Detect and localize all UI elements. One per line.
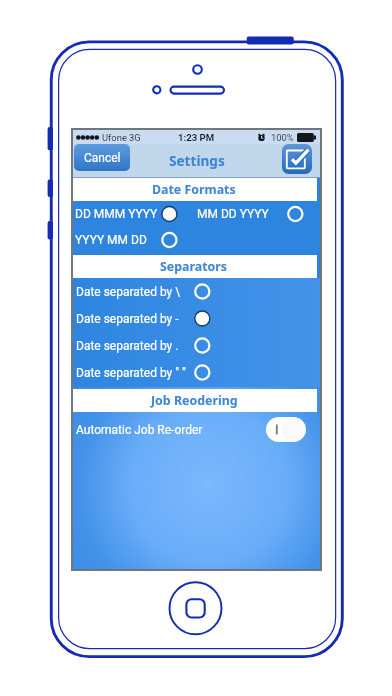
button[interactable]: Edit xyxy=(282,144,312,174)
button[interactable]: YYYY MM DD xyxy=(73,227,183,253)
button[interactable]: Date separated by " " xyxy=(73,359,320,386)
staticText: 1:23 PM xyxy=(178,132,215,143)
button[interactable]: MM DD YYYY xyxy=(183,201,320,227)
staticText: Automatic Job Re-order xyxy=(76,423,203,437)
staticText: Cancel xyxy=(84,151,121,165)
staticText: Job Reodering xyxy=(151,392,238,409)
staticText: Ufone xyxy=(102,132,127,143)
button[interactable]: Automatic Job Re-order xyxy=(73,412,320,447)
staticText: YYYY MM DD xyxy=(75,233,147,247)
button[interactable]: Date separated by - xyxy=(73,305,320,332)
staticText: 3G xyxy=(129,132,141,143)
staticText: Settings xyxy=(169,151,225,170)
staticText: Date separated by - xyxy=(76,312,179,326)
staticText: Date separated by \ xyxy=(76,285,181,299)
staticText: MM DD YYYY xyxy=(197,207,269,221)
staticText: 100% xyxy=(271,132,294,143)
button[interactable]: Date separated by . xyxy=(73,332,320,359)
button[interactable]: Date separated by \ xyxy=(73,278,320,305)
staticText: Date separated by . xyxy=(76,339,179,353)
staticText: Date separated by " " xyxy=(76,366,186,380)
button[interactable]: Automatic Job Re-order toggle xyxy=(266,417,306,442)
button[interactable]: Cancel xyxy=(74,144,130,171)
staticText: Date Formats xyxy=(152,181,236,198)
staticText: Separators xyxy=(160,258,228,275)
button[interactable]: DD MMM YYYY xyxy=(73,201,183,227)
staticText: DD MMM YYYY xyxy=(75,207,158,221)
